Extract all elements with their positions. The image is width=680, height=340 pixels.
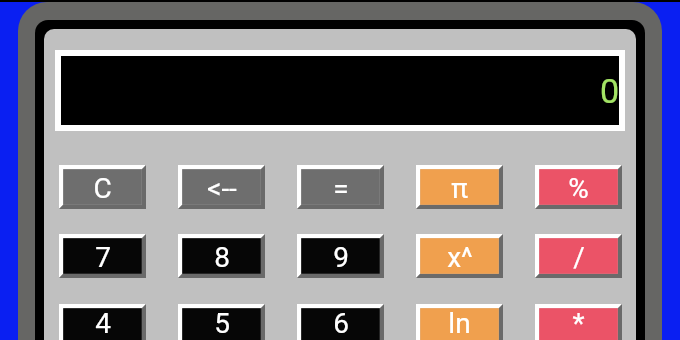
staticText: ln [448, 307, 471, 340]
button[interactable]: = [297, 165, 384, 209]
staticText: π [451, 172, 468, 205]
button[interactable]: π [416, 165, 503, 209]
button[interactable]: <-- [178, 165, 265, 209]
staticText: / [573, 241, 585, 274]
staticText: 7 [95, 241, 111, 274]
button[interactable]: 5 [178, 304, 265, 340]
staticText: % [568, 172, 589, 205]
button[interactable]: 6 [297, 304, 384, 340]
staticText: 8 [214, 241, 230, 274]
staticText: 4 [95, 307, 111, 340]
button[interactable]: x^ [416, 234, 503, 278]
staticText: 6 [333, 307, 349, 340]
staticText: * [572, 307, 585, 340]
staticText: 0 [599, 71, 619, 111]
button[interactable]: * [535, 304, 622, 340]
button[interactable]: C [59, 165, 146, 209]
staticText: <-- [207, 172, 237, 205]
button[interactable]: 7 [59, 234, 146, 278]
staticText: = [333, 172, 349, 205]
staticText: 5 [214, 307, 230, 340]
button[interactable]: 9 [297, 234, 384, 278]
button[interactable]: 8 [178, 234, 265, 278]
button[interactable]: % [535, 165, 622, 209]
button[interactable]: ln [416, 304, 503, 340]
staticText: 9 [333, 241, 349, 274]
button[interactable]: 4 [59, 304, 146, 340]
staticText: C [93, 172, 112, 205]
button[interactable]: / [535, 234, 622, 278]
staticText: x^ [447, 241, 473, 274]
